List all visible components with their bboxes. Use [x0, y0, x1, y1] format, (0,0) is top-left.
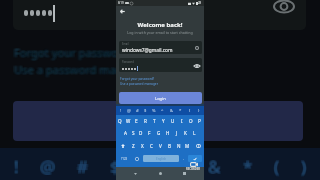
button[interactable]: N — [174, 139, 183, 152]
button[interactable]: ! — [117, 106, 125, 115]
button[interactable]: * — [176, 106, 185, 115]
button[interactable]: ) — [194, 106, 203, 115]
button[interactable]: C — [147, 139, 156, 152]
button[interactable]: F — [145, 127, 154, 139]
button[interactable]: $ — [141, 106, 149, 115]
staticText: ?123 — [121, 157, 128, 161]
button[interactable]: V — [156, 139, 165, 152]
button[interactable]: Home — [156, 169, 165, 178]
staticText: # — [78, 156, 89, 179]
button[interactable]: I — [177, 115, 186, 127]
button[interactable]: . — [179, 155, 188, 162]
button[interactable]: S — [129, 127, 137, 139]
staticText: & — [209, 155, 222, 178]
staticText: Use a password manager — [12, 63, 145, 78]
button[interactable]: T — [150, 115, 159, 127]
staticText: Welcome back! — [116, 21, 204, 29]
button[interactable]: A — [121, 127, 129, 139]
button[interactable]: Y — [159, 115, 168, 127]
button[interactable]: Q — [116, 115, 124, 127]
staticText: @ — [41, 154, 57, 177]
button[interactable]: Z — [129, 139, 138, 152]
staticText: 8:19 — [118, 1, 124, 5]
staticText: Forgot your password? — [16, 45, 137, 60]
button[interactable]: ( — [185, 106, 194, 115]
staticText: % — [142, 156, 157, 179]
staticText: ! — [13, 155, 18, 178]
staticText: Forgot your password? — [16, 44, 137, 59]
button[interactable]: Use a password manager — [120, 82, 158, 86]
button[interactable]: K — [181, 127, 190, 139]
button[interactable]: Recent apps — [180, 169, 189, 178]
button[interactable]: English — [143, 155, 179, 162]
button[interactable]: Shift — [116, 139, 129, 152]
button[interactable]: Show password — [193, 62, 200, 69]
staticText: # — [77, 156, 88, 179]
staticText: W — [126, 118, 131, 124]
staticText: & — [208, 155, 221, 178]
staticText: O — [189, 118, 193, 124]
staticText: % — [140, 155, 155, 178]
button[interactable]: E — [132, 115, 141, 127]
button[interactable]: D — [137, 127, 145, 139]
button[interactable]: Clear text — [193, 44, 200, 51]
staticText: ( — [275, 156, 281, 179]
staticText: G — [157, 130, 161, 136]
staticText: Use a password manager — [13, 62, 146, 77]
staticText: $ — [109, 155, 119, 178]
staticText: @ — [39, 154, 55, 177]
button[interactable]: Password — [119, 58, 202, 72]
button[interactable]: X — [138, 139, 147, 152]
staticText: ) — [301, 156, 307, 179]
button[interactable]: Forgot your password? — [120, 77, 155, 81]
button[interactable]: # — [133, 106, 141, 115]
button[interactable]: Backspace — [192, 139, 204, 152]
button[interactable]: Login — [119, 92, 202, 104]
staticText: A — [124, 130, 127, 136]
staticText: X — [141, 143, 144, 149]
button[interactable]: O — [186, 115, 195, 127]
staticText: ( — [273, 155, 279, 178]
staticText: & — [207, 156, 220, 179]
button[interactable]: ^ — [158, 106, 167, 115]
staticText: @ — [39, 155, 55, 178]
button[interactable]: L — [190, 127, 199, 139]
button[interactable]: J — [172, 127, 181, 139]
button[interactable]: U — [168, 115, 177, 127]
staticText: & — [209, 154, 222, 177]
staticText: ) — [300, 154, 306, 177]
button[interactable]: ?123 — [118, 155, 131, 162]
button[interactable]: R — [141, 115, 150, 127]
button[interactable]: B — [165, 139, 174, 152]
staticText: Forgot your password? — [13, 45, 134, 60]
button[interactable]: P — [195, 115, 204, 127]
button[interactable]: Back — [131, 169, 140, 178]
staticText: ! — [15, 155, 20, 178]
staticText: F — [148, 130, 151, 136]
staticText: $ — [110, 155, 120, 178]
button[interactable]: H — [163, 127, 172, 139]
button[interactable]: M — [183, 139, 192, 152]
staticText: % — [142, 155, 157, 178]
button[interactable]: Enter — [188, 155, 202, 162]
staticText: Use a password manager — [15, 61, 148, 76]
staticText: Login — [155, 96, 166, 101]
staticText: Use a password manager — [12, 61, 145, 76]
staticText: Forgot your password? — [15, 45, 136, 60]
staticText: % — [141, 156, 156, 179]
staticText: ^ — [176, 154, 186, 177]
staticText: ^ — [178, 154, 188, 177]
staticText: Forgot your password? — [12, 46, 133, 61]
button[interactable]: Emoji — [131, 155, 143, 162]
staticText: Y — [162, 118, 165, 124]
button[interactable]: @ — [125, 106, 133, 115]
button[interactable]: Email — [119, 41, 202, 54]
staticText: $ — [109, 154, 119, 177]
button[interactable]: Back — [118, 7, 127, 16]
staticText: Use a password manager — [15, 62, 148, 77]
button[interactable]: G — [154, 127, 163, 139]
button[interactable]: & — [167, 106, 176, 115]
button[interactable]: % — [149, 106, 158, 115]
staticText: ) — [302, 155, 308, 178]
button[interactable]: W — [124, 115, 132, 127]
